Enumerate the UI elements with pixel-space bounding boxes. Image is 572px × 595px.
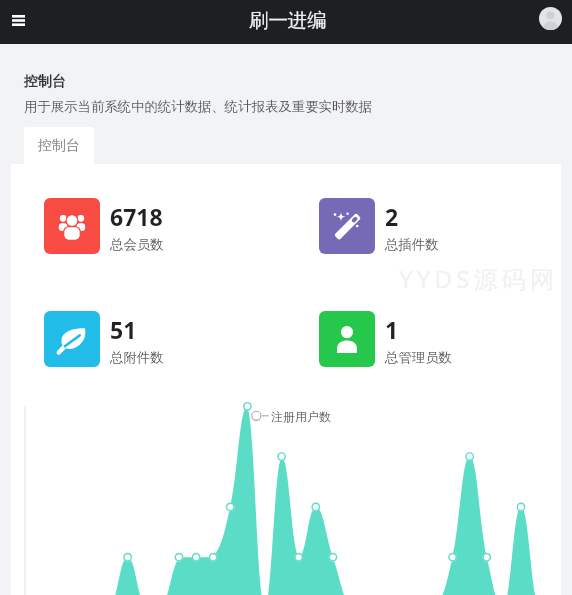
button[interactable]: 2 (319, 198, 561, 254)
staticText: 6718 (110, 201, 163, 232)
button[interactable]: Account (539, 7, 562, 30)
staticText: 51 (110, 314, 137, 345)
staticText: 控制台 (24, 73, 66, 91)
staticText: 控制台 (38, 137, 80, 155)
staticText: 总插件数 (385, 236, 439, 253)
staticText: 刷一进编 (249, 8, 327, 32)
button[interactable]: 51 (44, 311, 286, 367)
button[interactable]: 1 (319, 311, 561, 367)
button[interactable]: 6718 (44, 198, 286, 254)
staticText: 注册用户数 (271, 409, 331, 424)
staticText: 总附件数 (110, 349, 164, 366)
staticText: 总管理员数 (385, 349, 452, 366)
staticText: 总会员数 (110, 236, 164, 253)
staticText: 1 (385, 314, 399, 345)
staticText: 2 (385, 201, 399, 232)
staticText: YYDS源码网 (399, 262, 559, 295)
staticText: 用于展示当前系统中的统计数据、统计报表及重要实时数据 (24, 98, 373, 115)
button[interactable]: Menu (4, 6, 32, 34)
button[interactable]: 控制台 (24, 127, 94, 164)
